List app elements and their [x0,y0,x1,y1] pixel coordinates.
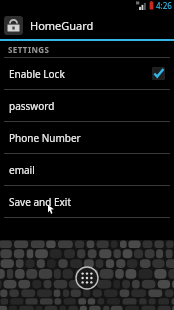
button[interactable]: Phone Number [0,122,174,153]
staticText: HomeGuard [30,18,94,33]
button[interactable]: Save and Exit [0,186,174,217]
button[interactable]: Enable Lock checkbox [152,67,165,80]
staticText: Save and Exit [9,195,165,209]
staticText: 4:26 [156,0,172,11]
staticText: email [9,163,165,177]
button[interactable]: Apps [75,266,99,290]
button[interactable]: Enable Lock [0,58,174,89]
staticText: SETTINGS [8,44,50,55]
staticText: Enable Lock [9,67,152,81]
button[interactable]: email [0,154,174,185]
staticText: password [9,99,165,113]
other: HomeGuard app icon [4,16,23,35]
staticText: Phone Number [9,131,165,145]
button[interactable]: password [0,90,174,121]
